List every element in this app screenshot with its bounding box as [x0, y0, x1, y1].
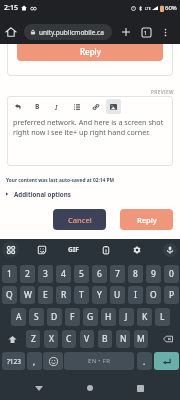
staticText: J — [125, 311, 128, 323]
staticText: N — [120, 333, 127, 345]
button[interactable]: T — [74, 286, 89, 304]
button[interactable]: Undo — [11, 100, 24, 113]
button[interactable]: U — [110, 286, 125, 304]
button[interactable]: , — [27, 352, 42, 370]
staticText: T — [79, 289, 84, 301]
button[interactable]: Q — [2, 286, 17, 304]
button[interactable]: H — [101, 308, 116, 326]
staticText: right now i see lte+ up right hand corne… — [13, 127, 151, 137]
button[interactable]: 3 — [38, 265, 53, 283]
staticText: EN • FR — [88, 357, 111, 365]
button[interactable]: Recents — [129, 377, 151, 399]
button[interactable]: Keyboard modes — [2, 241, 19, 258]
staticText: unity.publicmobile.ca — [39, 28, 104, 37]
button[interactable]: 5 — [74, 265, 89, 283]
staticText: Additional options — [14, 190, 71, 198]
button[interactable]: P — [164, 286, 179, 304]
staticText: 6 — [97, 268, 102, 280]
staticText: D — [51, 311, 58, 323]
button[interactable]: 7 — [110, 265, 125, 283]
button[interactable]: X — [44, 330, 58, 348]
button[interactable]: M — [134, 330, 148, 348]
staticText: Reply — [137, 215, 157, 225]
button[interactable]: V — [80, 330, 94, 348]
button[interactable]: Enter — [154, 352, 179, 370]
button[interactable]: Backspace — [157, 330, 178, 348]
button[interactable]: B — [31, 100, 44, 113]
staticText: A — [16, 311, 22, 323]
staticText: H — [105, 311, 112, 323]
button[interactable]: GIF — [65, 241, 82, 258]
button[interactable]: Home — [79, 377, 101, 399]
staticText: . — [143, 356, 146, 367]
button[interactable]: Tabs — [138, 24, 154, 40]
button[interactable]: Reply — [17, 36, 163, 61]
button[interactable]: K — [137, 308, 152, 326]
staticText: I — [134, 289, 137, 301]
button[interactable]: R — [56, 286, 71, 304]
button[interactable]: 8 — [128, 265, 143, 283]
button[interactable]: 1 — [2, 265, 17, 283]
button[interactable]: More options — [157, 24, 173, 40]
button[interactable]: 9 — [146, 265, 161, 283]
staticText: , — [33, 356, 36, 367]
button[interactable]: Y — [92, 286, 107, 304]
button[interactable]: Voice input — [163, 243, 177, 257]
button[interactable]: I — [128, 286, 143, 304]
staticText: Reply — [80, 46, 101, 57]
staticText: 7 — [115, 268, 120, 280]
button[interactable]: C — [62, 330, 76, 348]
button[interactable]: L — [155, 308, 170, 326]
staticText: B — [35, 102, 40, 111]
staticText: 60% — [165, 4, 177, 12]
staticText: Cancel — [68, 215, 92, 225]
button[interactable]: O — [146, 286, 161, 304]
staticText: R — [61, 289, 67, 301]
button[interactable]: Settings — [128, 241, 145, 258]
button[interactable]: Reply — [120, 209, 173, 230]
button[interactable]: 2 — [20, 265, 35, 283]
button[interactable]: W — [20, 286, 35, 304]
button[interactable]: I — [50, 100, 63, 113]
staticText: 2 — [25, 268, 30, 280]
staticText: 1 — [7, 268, 12, 280]
button[interactable]: Cancel — [53, 209, 106, 230]
staticText: ?123 — [7, 357, 21, 366]
button[interactable]: Stickers — [33, 241, 50, 258]
button[interactable]: Insert image — [106, 99, 121, 114]
staticText: 3 — [43, 268, 48, 280]
staticText: Your content was last auto-saved at 02:1… — [6, 177, 114, 184]
staticText: Y — [97, 289, 102, 301]
button[interactable]: EN • FR — [64, 352, 134, 370]
button[interactable]: Clipboard — [97, 241, 114, 258]
button[interactable]: ?123 — [2, 352, 25, 370]
button[interactable]: E — [38, 286, 53, 304]
staticText: Z — [31, 333, 36, 345]
button[interactable]: 4 — [56, 265, 71, 283]
button[interactable]: B — [98, 330, 112, 348]
button[interactable]: Z — [26, 330, 40, 348]
button[interactable]: A — [11, 308, 26, 326]
button[interactable]: 0 — [164, 265, 179, 283]
button[interactable]: Additional options — [4, 188, 72, 200]
button[interactable]: S — [29, 308, 44, 326]
button[interactable]: Shift — [2, 330, 23, 348]
button[interactable]: New tab — [118, 24, 134, 40]
button[interactable]: Emoji — [43, 352, 63, 370]
button[interactable]: . — [137, 352, 152, 370]
button[interactable]: Link — [89, 100, 102, 113]
staticText: L — [160, 311, 165, 323]
button[interactable]: Bullet list — [70, 100, 83, 113]
staticText: U — [114, 289, 121, 301]
staticText: K — [142, 311, 148, 323]
button[interactable]: Home — [2, 23, 20, 41]
button[interactable]: F — [65, 308, 80, 326]
button[interactable]: G — [83, 308, 98, 326]
staticText: V — [84, 333, 90, 345]
button[interactable]: Back — [28, 377, 50, 399]
button[interactable]: D — [47, 308, 62, 326]
button[interactable]: N — [116, 330, 130, 348]
button[interactable]: J — [119, 308, 134, 326]
button[interactable]: 6 — [92, 265, 107, 283]
button[interactable]: unity.publicmobile.ca — [24, 24, 112, 40]
